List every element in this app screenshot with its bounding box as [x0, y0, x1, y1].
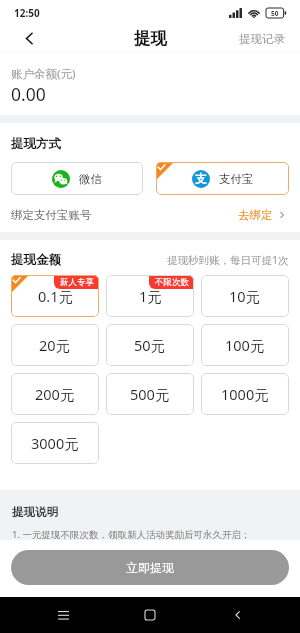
staticText: 新人专享: [60, 277, 94, 288]
button[interactable]: 3000元: [11, 422, 99, 464]
button[interactable]: 微信: [11, 162, 143, 195]
staticText: 提现说明: [12, 505, 58, 519]
staticText: 微信: [79, 172, 102, 186]
button[interactable]: Back: [16, 25, 43, 52]
staticText: 500元: [130, 384, 170, 404]
staticText: 3000元: [31, 433, 79, 453]
staticText: 50: [271, 9, 279, 18]
staticText: 立即提现: [126, 560, 174, 575]
button[interactable]: Recents: [38, 597, 88, 633]
staticText: 12:50: [14, 6, 40, 20]
button[interactable]: 50元: [106, 324, 194, 366]
button[interactable]: 500元: [106, 373, 194, 415]
staticText: 提现方式: [11, 136, 61, 152]
staticText: 提现记录: [239, 32, 285, 46]
staticText: 不限次数: [155, 277, 189, 288]
button[interactable]: 10元: [201, 275, 289, 317]
staticText: 100元: [225, 335, 265, 355]
button[interactable]: 立即提现: [11, 550, 289, 585]
staticText: 提现: [134, 28, 167, 49]
staticText: 提现金额: [11, 252, 61, 268]
staticText: 支: [195, 172, 207, 186]
staticText: 0.1元: [38, 286, 73, 306]
staticText: 账户余额(元): [11, 66, 76, 82]
staticText: 200元: [35, 384, 75, 404]
staticText: 20元: [39, 335, 71, 355]
button[interactable]: Home: [125, 597, 175, 633]
button[interactable]: 0.1元: [11, 275, 99, 317]
staticText: 10元: [229, 286, 261, 306]
button[interactable]: 提现记录: [229, 28, 300, 50]
button[interactable]: 1000元: [201, 373, 289, 415]
staticText: 支付宝: [219, 172, 254, 186]
staticText: 绑定支付宝账号: [11, 208, 92, 222]
button[interactable]: 100元: [201, 324, 289, 366]
staticText: 去绑定: [238, 208, 273, 222]
button[interactable]: 1元: [106, 275, 194, 317]
button[interactable]: 20元: [11, 324, 99, 366]
staticText: 0.00: [11, 82, 46, 106]
button[interactable]: 去绑定: [238, 206, 289, 224]
button[interactable]: 200元: [11, 373, 99, 415]
staticText: 1000元: [221, 384, 269, 404]
staticText: 1元: [139, 286, 162, 306]
staticText: 50元: [134, 335, 166, 355]
staticText: 提现秒到账，每日可提1次: [167, 253, 289, 267]
button[interactable]: 支: [156, 162, 289, 195]
button[interactable]: Back: [213, 597, 263, 633]
staticText: 1. 一元提现不限次数，领取新人活动奖励后可永久开启；: [12, 528, 251, 540]
